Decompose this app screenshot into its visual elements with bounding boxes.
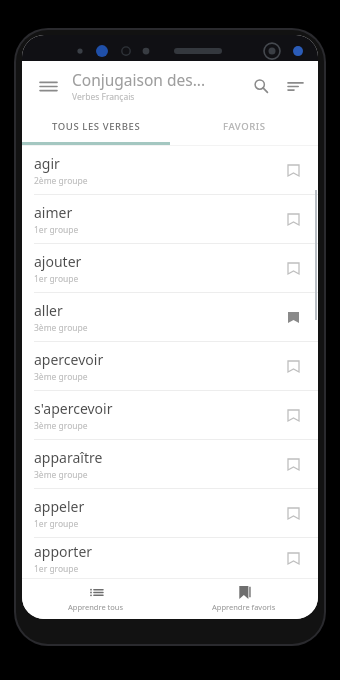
button[interactable]: FAVORIS (170, 111, 318, 142)
button[interactable]: Bookmark (280, 304, 306, 330)
staticText: agir (34, 154, 60, 173)
button[interactable]: apparaître (22, 440, 318, 489)
staticText: aimer (34, 203, 73, 222)
button[interactable]: TOUS LES VERBES (22, 111, 170, 142)
staticText: s'apercevoir (34, 399, 113, 418)
staticText: apporter (34, 542, 93, 561)
button[interactable]: Search (244, 69, 278, 103)
button[interactable]: s'apercevoir (22, 391, 318, 440)
button[interactable]: Menu (28, 66, 68, 106)
staticText: apparaître (34, 448, 103, 467)
staticText: 3ème groupe (34, 469, 88, 481)
button[interactable]: Apprendre favoris (170, 579, 318, 619)
button[interactable]: Bookmark (280, 545, 306, 571)
staticText: TOUS LES VERBES (52, 120, 141, 133)
staticText: 1er groupe (34, 518, 79, 530)
staticText: FAVORIS (223, 120, 266, 133)
button[interactable]: Bookmark (280, 402, 306, 428)
staticText: 1er groupe (34, 563, 79, 575)
button[interactable]: Bookmark (280, 500, 306, 526)
staticText: appeler (34, 497, 85, 516)
button[interactable]: Bookmark (280, 206, 306, 232)
staticText: 2ème groupe (34, 175, 88, 187)
staticText: 3ème groupe (34, 322, 88, 334)
staticText: Verbes Français (72, 91, 135, 103)
staticText: 3ème groupe (34, 371, 88, 383)
button[interactable]: Bookmark (280, 157, 306, 183)
button[interactable]: ajouter (22, 244, 318, 293)
button[interactable]: apporter (22, 538, 318, 578)
button[interactable]: Bookmark (280, 255, 306, 281)
button[interactable]: agir (22, 146, 318, 195)
staticText: 3ème groupe (34, 420, 88, 432)
button[interactable]: Bookmark (280, 353, 306, 379)
staticText: Apprendre favoris (212, 602, 276, 612)
button[interactable]: Sort (278, 69, 312, 103)
button[interactable]: apercevoir (22, 342, 318, 391)
button[interactable]: Apprendre tous (22, 579, 170, 619)
staticText: Conjugaison des... (72, 69, 206, 90)
button[interactable]: Bookmark (280, 451, 306, 477)
button[interactable]: aller (22, 293, 318, 342)
staticText: 1er groupe (34, 273, 79, 285)
staticText: ajouter (34, 252, 82, 271)
button[interactable]: appeler (22, 489, 318, 538)
staticText: 1er groupe (34, 224, 79, 236)
staticText: aller (34, 301, 63, 320)
button[interactable]: aimer (22, 195, 318, 244)
staticText: Apprendre tous (68, 602, 124, 612)
staticText: apercevoir (34, 350, 104, 369)
